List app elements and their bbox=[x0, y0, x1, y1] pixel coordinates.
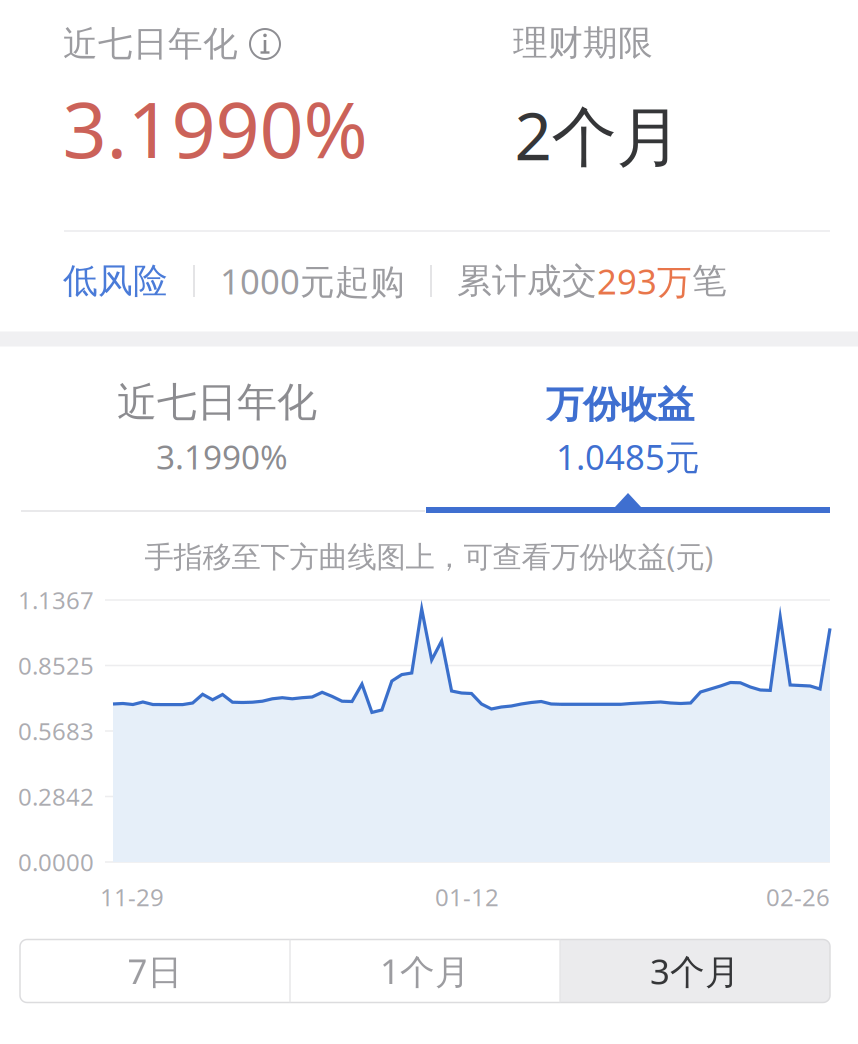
staticText: 近七日年化 bbox=[117, 377, 317, 428]
staticText: 02-26 bbox=[766, 881, 830, 913]
staticText: 1000元起购 bbox=[220, 257, 405, 305]
button[interactable]: 近七日年化 bbox=[21, 354, 425, 509]
staticText: 0.0000 bbox=[18, 846, 94, 878]
staticText: 01-12 bbox=[435, 881, 499, 913]
staticText: 11-29 bbox=[100, 881, 164, 913]
staticText: 累计成交 bbox=[457, 259, 597, 303]
staticText: 0.2842 bbox=[18, 780, 94, 813]
staticText: 理财期限 bbox=[513, 21, 653, 65]
staticText: 笔 bbox=[692, 259, 727, 303]
staticText: 低风险 bbox=[63, 259, 168, 303]
staticText: 手指移至下方曲线图上，可查看万份收益(元) bbox=[144, 536, 713, 576]
button[interactable]: 万份收益 bbox=[426, 354, 830, 509]
staticText: 1.1367 bbox=[18, 584, 94, 616]
staticText: 近七日年化 bbox=[63, 22, 238, 66]
staticText: 万份收益 bbox=[546, 381, 694, 428]
staticText: 7日 bbox=[127, 947, 182, 995]
staticText: 293万 bbox=[597, 257, 692, 305]
button[interactable]: 3个月 bbox=[560, 939, 830, 1002]
staticText: 0.8525 bbox=[18, 649, 94, 682]
staticText: 1.0485元 bbox=[556, 433, 700, 480]
staticText: 3.1990% bbox=[156, 434, 288, 479]
staticText: 0.5683 bbox=[18, 715, 94, 747]
button[interactable]: 近七日年化 bbox=[63, 22, 281, 66]
staticText: 1个月 bbox=[380, 947, 470, 995]
button[interactable]: 7日 bbox=[20, 939, 290, 1002]
button[interactable]: 1个月 bbox=[290, 939, 560, 1002]
staticText: 3.1990% bbox=[62, 75, 367, 181]
staticText: 3个月 bbox=[650, 947, 740, 995]
staticText: 2个月 bbox=[514, 90, 681, 179]
